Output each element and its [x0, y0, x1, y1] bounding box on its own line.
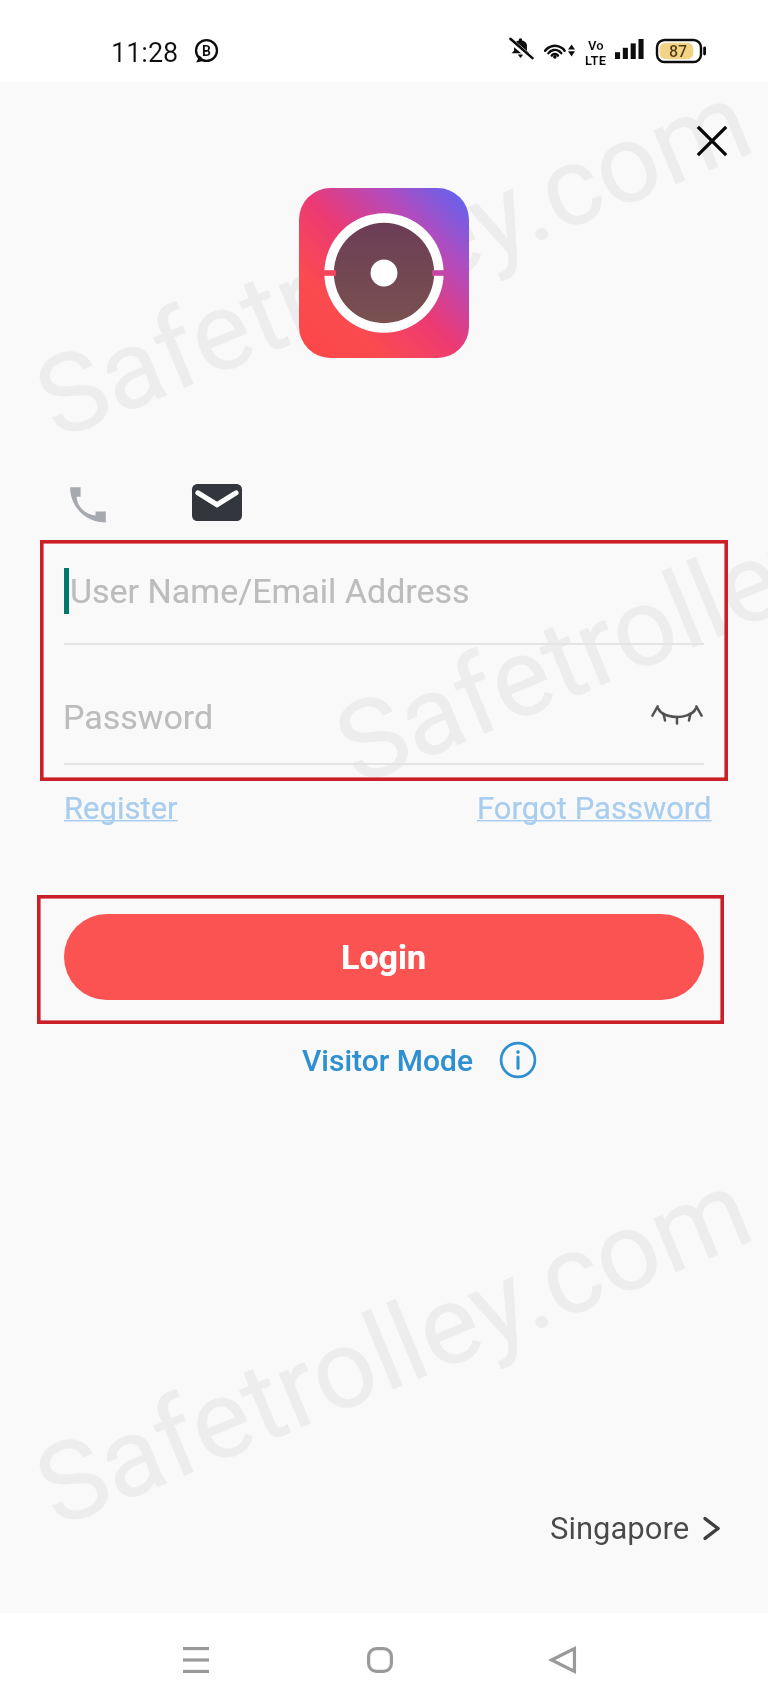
- staticText: Vo: [588, 38, 604, 53]
- button[interactable]: Back: [523, 1613, 603, 1707]
- button[interactable]: User Name/Email Address: [64, 556, 704, 645]
- staticText: LTE: [585, 53, 606, 68]
- button[interactable]: Close: [684, 113, 740, 169]
- button[interactable]: Email login: [181, 466, 253, 538]
- staticText: Forgot Password: [477, 790, 712, 826]
- staticText: Password: [63, 697, 214, 737]
- button[interactable]: Forgot Password: [469, 784, 720, 832]
- staticText: Safetrolley.com: [18, 1144, 768, 1553]
- staticText: User Name/Email Address: [70, 571, 470, 611]
- staticText: Singapore: [550, 1510, 690, 1546]
- staticText: Visitor Mode: [302, 1043, 474, 1078]
- button[interactable]: Home: [340, 1613, 420, 1707]
- staticText: 87: [669, 42, 688, 61]
- button[interactable]: Visitor Mode: [286, 1032, 552, 1088]
- button[interactable]: Password: [64, 682, 704, 763]
- staticText: 11:28: [111, 37, 179, 69]
- staticText: Login: [341, 937, 427, 977]
- button[interactable]: Phone login: [53, 468, 125, 540]
- staticText: Safetrolley.com: [318, 402, 768, 811]
- button[interactable]: Recents: [156, 1613, 236, 1707]
- button[interactable]: Show password: [648, 684, 706, 742]
- button[interactable]: Login: [64, 914, 704, 1000]
- staticText: Safetrolley.com: [18, 56, 768, 465]
- staticText: Register: [64, 790, 178, 826]
- staticText: B: [202, 43, 211, 59]
- button[interactable]: Register: [56, 784, 186, 832]
- button[interactable]: Singapore: [534, 1498, 736, 1558]
